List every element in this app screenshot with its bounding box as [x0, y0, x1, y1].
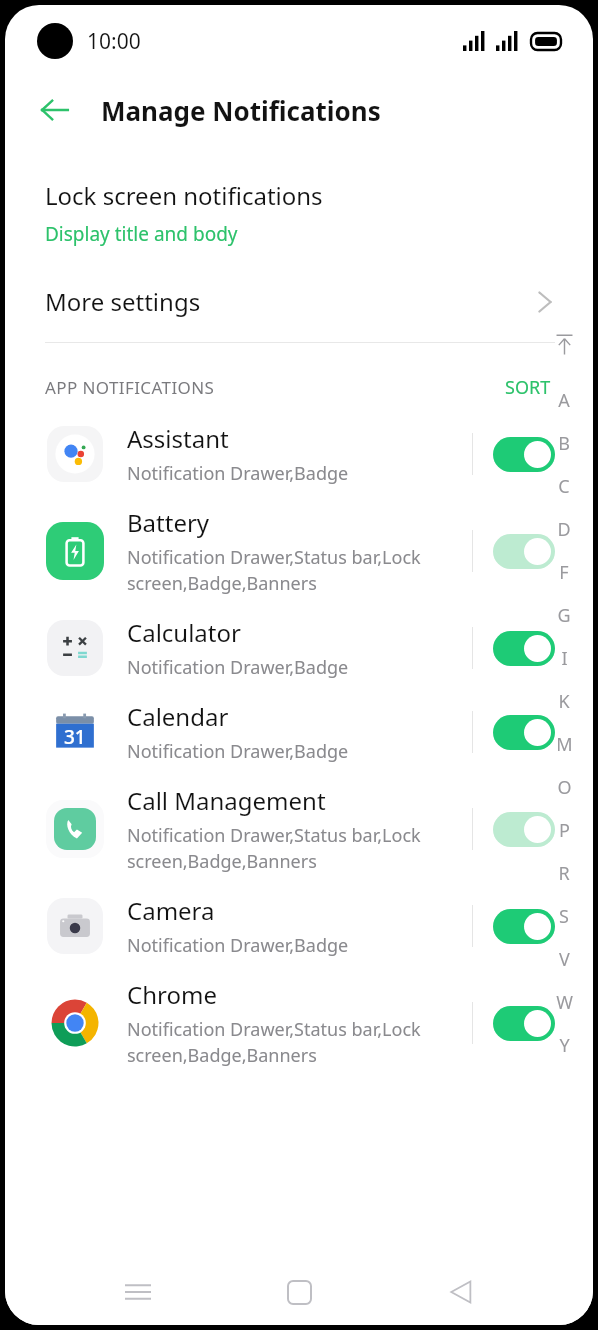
staticText: G [557, 603, 571, 628]
staticText: More settings [45, 285, 537, 318]
staticText: Notification Drawer,Badge [127, 933, 349, 958]
staticText: P [559, 818, 570, 843]
button[interactable]: Home [271, 1264, 327, 1320]
staticText: Notification Drawer,Status bar,Lock scre… [127, 1017, 421, 1068]
button[interactable]: Recent apps [110, 1264, 166, 1320]
staticText: M [556, 732, 573, 757]
button[interactable]: Battery [5, 506, 593, 596]
staticText: Notification Drawer,Badge [127, 461, 349, 486]
staticText: Notification Drawer,Status bar,Lock scre… [127, 545, 421, 596]
staticText: Notification Drawer,Status bar,Lock scre… [127, 823, 421, 874]
staticText: SORT [505, 375, 551, 400]
staticText: V [559, 947, 570, 972]
button[interactable]: Calculator [5, 616, 593, 680]
staticText: APP NOTIFICATIONS [45, 376, 501, 399]
button[interactable]: Assistant [5, 422, 593, 486]
staticText: Display title and body [45, 221, 238, 247]
staticText: I [561, 646, 568, 671]
staticText: 31 [64, 724, 86, 750]
button[interactable]: Enabled [493, 437, 555, 472]
staticText: O [557, 775, 572, 800]
button[interactable]: Enabled [493, 631, 555, 666]
staticText: Calculator [127, 616, 241, 649]
staticText: Call Management [127, 784, 326, 817]
staticText: Y [559, 1033, 570, 1058]
button[interactable]: More settings [5, 285, 593, 318]
button[interactable]: Disabled [493, 812, 555, 847]
staticText: A [558, 388, 570, 413]
button[interactable]: Chrome [5, 978, 593, 1068]
staticText: Assistant [127, 422, 229, 455]
staticText: Notification Drawer,Badge [127, 739, 349, 764]
staticText: Lock screen notifications [45, 179, 323, 212]
staticText: D [557, 517, 571, 542]
staticText: W [556, 990, 573, 1015]
staticText: Calendar [127, 700, 229, 733]
button[interactable]: Camera [5, 894, 593, 958]
button[interactable]: Back [31, 86, 79, 134]
button[interactable]: Enabled [493, 909, 555, 944]
staticText: Battery [127, 506, 210, 539]
staticText: Chrome [127, 978, 217, 1011]
button[interactable]: 31 [5, 700, 593, 764]
button[interactable]: Alphabet index [549, 333, 579, 1067]
staticText: K [558, 689, 570, 714]
staticText: Notification Drawer,Badge [127, 655, 349, 680]
staticText: S [559, 904, 569, 929]
button[interactable]: Lock screen notifications [5, 179, 593, 247]
staticText: 10:00 [87, 27, 141, 56]
button[interactable]: Back [432, 1264, 488, 1320]
button[interactable]: Enabled [493, 1006, 555, 1041]
button[interactable]: Disabled [493, 534, 555, 569]
staticText: Camera [127, 894, 215, 927]
button[interactable]: Call Management [5, 784, 593, 874]
staticText: Manage Notifications [101, 93, 381, 128]
button[interactable]: SORT [501, 371, 555, 404]
button[interactable]: Enabled [493, 715, 555, 750]
staticText: R [558, 861, 570, 886]
staticText: B [558, 431, 570, 456]
staticText: C [558, 474, 570, 499]
staticText: F [559, 560, 569, 585]
